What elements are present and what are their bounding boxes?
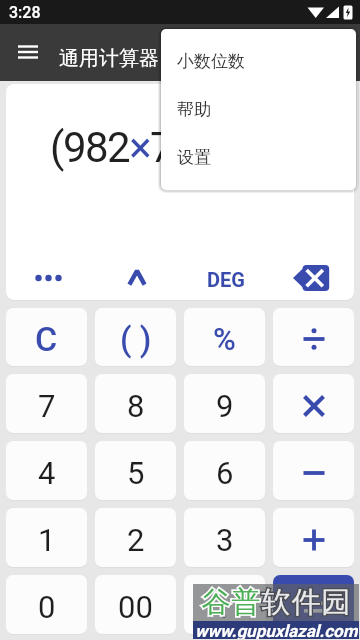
button[interactable] — [202, 256, 246, 300]
staticText: 5 — [127, 455, 145, 491]
button[interactable]: 8 — [95, 374, 176, 433]
button[interactable]: 4 — [6, 441, 87, 500]
button[interactable]: 6 — [184, 441, 265, 500]
staticText: C — [35, 319, 58, 359]
button[interactable] — [273, 374, 354, 433]
staticText: 帮助 — [177, 99, 211, 120]
staticText: 设置 — [177, 147, 211, 168]
button[interactable] — [12, 34, 48, 70]
button[interactable]: 7 — [6, 374, 87, 433]
staticText: 小数位数 — [177, 51, 245, 72]
staticText: 软件园 — [261, 584, 351, 621]
button[interactable] — [273, 441, 354, 500]
staticText: 软件园 — [261, 584, 351, 621]
staticText: 0 — [38, 589, 56, 625]
staticText: 00 — [118, 589, 153, 625]
staticText: 2 — [127, 522, 145, 558]
button[interactable] — [116, 256, 160, 300]
button[interactable]: 9 — [184, 374, 265, 433]
button[interactable]: 小数位数 — [161, 37, 356, 85]
staticText: 谷普 — [201, 584, 261, 621]
button[interactable] — [26, 256, 70, 300]
button[interactable]: 1 — [6, 508, 87, 567]
staticText: 谷普 — [201, 584, 261, 621]
button[interactable]: 00 — [95, 575, 176, 634]
button[interactable]: 帮助 — [161, 85, 356, 133]
button[interactable]: 设置 — [161, 133, 356, 181]
staticText: 1 — [38, 522, 56, 558]
staticText: 6 — [216, 455, 234, 491]
staticText: DEG — [207, 268, 245, 291]
button[interactable] — [273, 308, 354, 366]
staticText: 9 — [216, 388, 234, 424]
staticText: 3 — [216, 522, 234, 558]
staticText: 通用计算器 — [59, 46, 159, 71]
staticText: www.gupuxlazal.com — [195, 621, 358, 639]
staticText: ( ) — [120, 320, 152, 359]
staticText: 8 — [127, 388, 145, 424]
button[interactable]: C — [6, 308, 87, 366]
staticText: (982×7 — [50, 123, 173, 172]
button[interactable]: ( ) — [95, 308, 176, 366]
staticText: 7 — [38, 388, 56, 424]
button[interactable]: 0 — [6, 575, 87, 634]
button[interactable]: 5 — [95, 441, 176, 500]
button[interactable] — [273, 508, 354, 567]
button[interactable]: 3 — [184, 508, 265, 567]
staticText: % — [213, 321, 236, 357]
button[interactable]: . — [184, 575, 265, 634]
button[interactable]: % — [184, 308, 265, 366]
staticText: . — [220, 589, 229, 625]
staticText: 3:28 — [9, 3, 41, 22]
staticText: 4 — [38, 455, 56, 491]
button[interactable] — [289, 256, 333, 300]
button[interactable] — [273, 575, 354, 634]
button[interactable]: 2 — [95, 508, 176, 567]
